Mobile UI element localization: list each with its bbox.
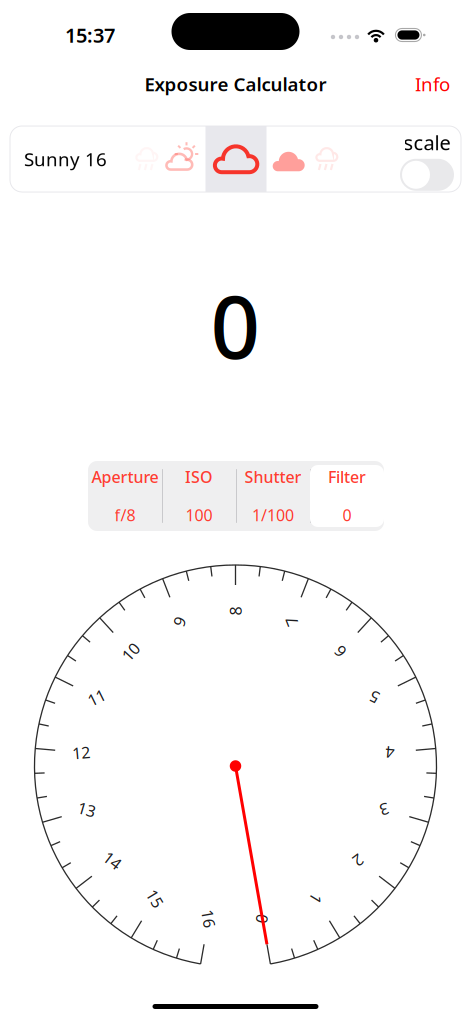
staticText: 0 — [342, 504, 351, 526]
staticText: Filter — [328, 466, 366, 487]
staticText: Sunny 16 — [24, 147, 107, 171]
button[interactable]: Rain — [126, 126, 170, 192]
button[interactable]: Shutter — [236, 465, 310, 527]
button[interactable]: Showers — [306, 126, 350, 192]
staticText: 14 — [103, 850, 121, 871]
staticText: 1/100 — [252, 504, 294, 526]
staticText: 9 — [175, 611, 184, 632]
staticText: 0 — [258, 908, 267, 929]
staticText: Info — [415, 72, 450, 96]
staticText: ISO — [185, 466, 213, 487]
staticText: 15 — [146, 888, 164, 909]
button[interactable]: Cloudy — [205, 126, 266, 192]
staticText: 1 — [311, 888, 320, 909]
staticText: 5 — [370, 687, 379, 708]
button[interactable]: ISO — [162, 465, 236, 527]
staticText: scale — [403, 129, 450, 156]
staticText: Exposure Calculator — [144, 72, 326, 96]
button[interactable]: scale — [400, 159, 454, 191]
staticText: 11 — [87, 687, 105, 708]
staticText: 8 — [231, 600, 240, 622]
staticText: 7 — [287, 611, 296, 632]
button[interactable]: Filter — [310, 465, 384, 527]
staticText: 3 — [380, 799, 389, 820]
staticText: 6 — [336, 641, 345, 662]
staticText: 100 — [185, 504, 212, 526]
staticText: 12 — [72, 742, 90, 763]
button[interactable]: Info — [415, 72, 471, 96]
staticText: f/8 — [114, 504, 135, 526]
staticText: 13 — [78, 799, 96, 820]
staticText: 2 — [354, 850, 363, 871]
button[interactable]: Partly cloudy — [159, 126, 203, 192]
button[interactable]: Aperture — [88, 465, 162, 527]
staticText: 10 — [122, 641, 140, 662]
staticText: Aperture — [91, 466, 158, 487]
staticText: 4 — [385, 742, 394, 763]
staticText: 0 — [210, 267, 260, 383]
button[interactable]: Overcast — [265, 126, 309, 192]
staticText: 15:37 — [65, 22, 115, 48]
staticText: Shutter — [244, 466, 301, 487]
staticText: 16 — [200, 908, 218, 929]
